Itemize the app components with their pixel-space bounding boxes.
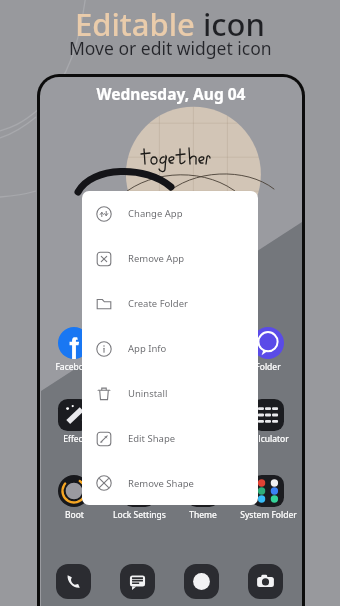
staticText: System Folder — [240, 509, 297, 521]
button[interactable]: Calculator — [238, 399, 298, 445]
staticText: Boot — [65, 509, 84, 521]
staticText: Facebook — [55, 361, 94, 373]
button[interactable] — [109, 399, 169, 445]
staticText: Remove Shape — [128, 477, 194, 490]
button[interactable]: Remove App — [82, 236, 258, 281]
button[interactable]: Camera — [248, 564, 283, 599]
button[interactable] — [173, 399, 233, 445]
button[interactable]: Phone — [56, 564, 91, 599]
button[interactable]: Messages — [120, 564, 155, 599]
button[interactable]: Create Folder — [82, 281, 258, 326]
staticText: Create Folder — [128, 297, 188, 310]
staticText: App Info — [128, 342, 167, 355]
staticText: Edit Shape — [128, 432, 176, 445]
staticText: Lock Settings — [113, 509, 166, 521]
staticText: Calculator — [248, 433, 289, 445]
staticText: Move or edit widget icon — [69, 36, 272, 60]
button[interactable]: Uninstall — [82, 371, 258, 416]
button[interactable]: App Info — [82, 326, 258, 371]
staticText: Folder — [255, 361, 281, 373]
button[interactable]: Facebook — [44, 327, 104, 373]
staticText: Effect — [63, 433, 86, 445]
button[interactable]: Theme — [173, 475, 233, 521]
button[interactable]: Browser — [184, 564, 219, 599]
staticText: icon — [203, 3, 265, 45]
button[interactable]: Remove Shape — [82, 461, 258, 505]
button[interactable]: Change App — [82, 191, 258, 236]
staticText: Editable — [75, 3, 203, 45]
button[interactable]: Lock Settings — [109, 475, 169, 521]
button[interactable]: System Folder — [238, 475, 298, 521]
staticText: Wednesday, Aug 04 — [40, 83, 302, 104]
staticText: Change App — [128, 207, 183, 220]
button[interactable]: Boot — [44, 475, 104, 521]
button[interactable] — [109, 327, 169, 373]
staticText: Theme — [189, 509, 217, 521]
staticText: Uninstall — [128, 387, 168, 400]
button[interactable]: Edit Shape — [82, 416, 258, 461]
staticText: Remove App — [128, 252, 185, 265]
button[interactable]: Effect — [44, 399, 104, 445]
button[interactable]: Folder — [238, 327, 298, 373]
